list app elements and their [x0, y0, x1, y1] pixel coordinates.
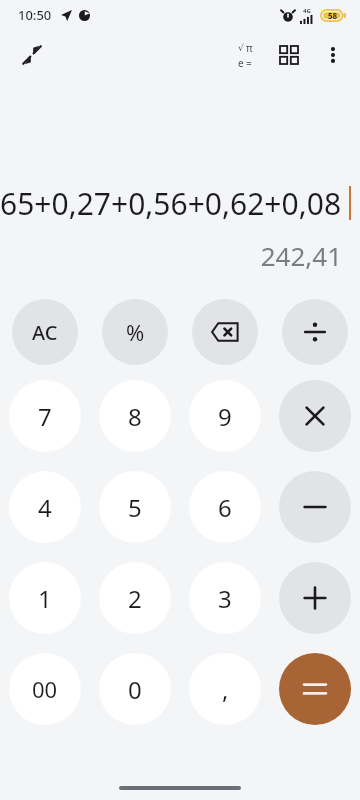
- staticText: 1: [38, 582, 52, 615]
- staticText: ,: [222, 673, 229, 706]
- staticText: 7: [38, 400, 52, 433]
- button[interactable]: 4: [9, 471, 81, 543]
- button[interactable]: ,: [189, 653, 261, 725]
- button[interactable]: Scientific mode: [224, 34, 266, 76]
- staticText: %: [126, 317, 145, 347]
- staticText: √: [238, 43, 244, 53]
- button[interactable]: Divide: [282, 299, 348, 365]
- button[interactable]: 00: [9, 653, 81, 725]
- staticText: e: [238, 56, 244, 70]
- button[interactable]: Backspace: [192, 299, 258, 365]
- button[interactable]: Equals: [279, 653, 351, 725]
- staticText: 3: [218, 582, 232, 615]
- button[interactable]: 6: [189, 471, 261, 543]
- staticText: 65+0,27+0,56+0,62+0,08+0,35: [0, 183, 349, 224]
- staticText: 00: [32, 674, 58, 704]
- staticText: 6: [218, 491, 232, 524]
- button[interactable]: Operator: [279, 380, 351, 452]
- button[interactable]: %: [102, 299, 168, 365]
- button[interactable]: 2: [99, 562, 171, 634]
- staticText: 242,41: [0, 238, 342, 273]
- staticText: 9: [218, 400, 232, 433]
- button[interactable]: 9: [189, 380, 261, 452]
- button[interactable]: 3: [189, 562, 261, 634]
- staticText: =: [246, 56, 252, 70]
- button[interactable]: AC: [12, 299, 78, 365]
- staticText: 4G: [303, 7, 311, 15]
- button[interactable]: Operator: [279, 562, 351, 634]
- button[interactable]: History: [268, 34, 310, 76]
- staticText: 4: [38, 491, 52, 524]
- button[interactable]: 1: [9, 562, 81, 634]
- staticText: 0: [128, 673, 142, 706]
- button[interactable]: 7: [9, 380, 81, 452]
- button[interactable]: Collapse: [10, 33, 54, 77]
- button[interactable]: 0: [99, 653, 171, 725]
- staticText: 8: [128, 400, 142, 433]
- staticText: AC: [32, 319, 58, 346]
- button[interactable]: 5: [99, 471, 171, 543]
- staticText: π: [246, 41, 253, 55]
- staticText: 2: [128, 582, 142, 615]
- button[interactable]: Operator: [279, 471, 351, 543]
- staticText: 10:50: [18, 6, 52, 24]
- staticText: 5: [128, 491, 142, 524]
- button[interactable]: More options: [312, 34, 354, 76]
- staticText: 58: [328, 10, 338, 21]
- button[interactable]: 8: [99, 380, 171, 452]
